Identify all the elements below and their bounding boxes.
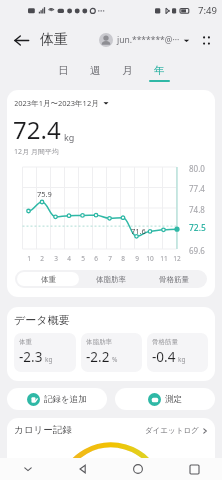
button[interactable]: Back (8, 27, 34, 53)
button[interactable]: 骨格筋量 (147, 333, 208, 372)
button[interactable]: 週 (79, 58, 111, 86)
button[interactable]: 体脂肪率 (81, 333, 142, 372)
button[interactable]: 体重 (14, 333, 76, 372)
button[interactable]: 日 (47, 58, 79, 86)
button[interactable]: 測定 (115, 388, 215, 410)
staticText: 3 (50, 254, 62, 263)
staticText: 体重 (19, 338, 32, 346)
staticText: kg (178, 355, 186, 364)
staticText: -2.3 (19, 348, 43, 366)
staticText: 7:49 (198, 4, 217, 17)
staticText: 7 (104, 254, 116, 263)
button[interactable]: 骨格筋量 (142, 272, 205, 286)
staticText: カロリー記録 (14, 424, 72, 436)
staticText: 12月 月間平均 (14, 147, 59, 157)
staticText: 69.6 (189, 245, 205, 256)
staticText: 72.4 (13, 113, 61, 146)
staticText: 6 (90, 254, 102, 263)
button[interactable]: 体重 (17, 272, 79, 286)
staticText: 77.4 (189, 183, 205, 194)
staticText: 4 (63, 254, 75, 263)
staticText: -0.4 (152, 348, 176, 366)
staticText: 週 (90, 64, 101, 77)
staticText: 9 (131, 254, 143, 263)
staticText: 71.6 (131, 226, 146, 236)
staticText: 2023年1月〜2023年12月 (14, 98, 99, 108)
staticText: 骨格筋量 (159, 275, 189, 284)
staticText: 5 (77, 254, 89, 263)
staticText: 80.0 (189, 163, 205, 174)
staticText: kg (64, 131, 75, 143)
staticText: % (112, 355, 118, 364)
button[interactable]: 年 (143, 58, 175, 86)
button[interactable]: More options (196, 30, 216, 50)
button[interactable]: 月 (111, 58, 143, 86)
staticText: 日 (58, 64, 69, 77)
staticText: 年 (154, 64, 165, 77)
staticText: 1 (23, 254, 35, 263)
staticText: 記録を追加 (44, 394, 87, 405)
staticText: 体重 (40, 31, 68, 49)
staticText: 体重 (41, 275, 56, 284)
button[interactable]: Home (110, 458, 166, 480)
staticText: 74.8 (189, 204, 205, 215)
button[interactable]: 体脂肪率 (79, 272, 142, 286)
button[interactable]: jun.*******@··· (99, 33, 190, 47)
button[interactable]: 記録を追加 (7, 388, 107, 410)
staticText: jun.*******@··· (117, 34, 180, 46)
staticText: ダイエットログ (145, 426, 199, 435)
staticText: 測定 (165, 394, 182, 405)
staticText: 11 (158, 254, 170, 263)
button[interactable]: Hide keyboard (0, 458, 55, 480)
staticText: kg (45, 355, 53, 364)
staticText: 2 (36, 254, 48, 263)
staticText: 75.9 (37, 189, 52, 199)
staticText: 骨格筋量 (152, 338, 178, 346)
staticText: 月 (122, 64, 133, 77)
button[interactable]: Recent apps (166, 458, 222, 480)
staticText: 12 (171, 254, 183, 263)
staticText: 体脂肪率 (96, 275, 126, 284)
button[interactable]: ダイエットログ (145, 426, 208, 435)
staticText: 体脂肪率 (86, 338, 112, 346)
button[interactable]: 2023年1月〜2023年12月 (14, 97, 109, 109)
button[interactable]: Back (55, 458, 110, 480)
staticText: 10 (144, 254, 156, 263)
staticText: 8 (117, 254, 129, 263)
staticText: データ概要 (14, 313, 70, 327)
staticText: -2.2 (86, 348, 110, 366)
staticText: 72.5 (189, 222, 206, 234)
